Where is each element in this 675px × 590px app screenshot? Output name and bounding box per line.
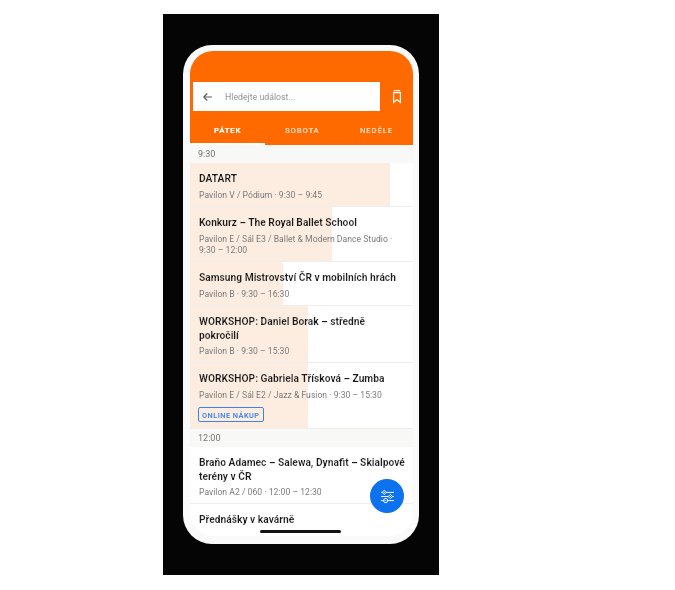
button[interactable]: Konkurz – The Royal Ballet School bbox=[190, 207, 413, 262]
staticText: ONLINE NÁKUP bbox=[202, 411, 260, 420]
staticText: Pavilon B · 9:30 – 16:30 bbox=[199, 289, 290, 299]
staticText: Samsung Mistrovství ČR v mobilních hrách bbox=[199, 272, 396, 284]
staticText: NEDĚLE bbox=[360, 126, 393, 135]
button[interactable]: Přednášky v kavárně bbox=[190, 504, 413, 533]
button[interactable]: ONLINE NÁKUP bbox=[198, 407, 264, 422]
staticText: Pavilon E / Sál E2 / Jazz & Fusion · 9:3… bbox=[199, 390, 382, 400]
staticText: 12:00 bbox=[198, 433, 221, 444]
staticText: Konkurz – The Royal Ballet School bbox=[199, 217, 357, 229]
button[interactable]: WORKSHOP: Gabriela Třísková – Zumba bbox=[190, 363, 413, 429]
button[interactable]: Samsung Mistrovství ČR v mobilních hrách bbox=[190, 262, 413, 306]
staticText: Hledejte událost... bbox=[225, 92, 296, 102]
button[interactable]: Bookmarks bbox=[384, 82, 409, 110]
button[interactable]: Braňo Adamec – Salewa, Dynafit – Skialpo… bbox=[190, 447, 413, 504]
staticText: Pavilon V / Pódium · 9:30 – 9:45 bbox=[199, 190, 323, 200]
staticText: SOBOTA bbox=[285, 126, 320, 135]
staticText: WORKSHOP: Daniel Borak – středně pokroči… bbox=[199, 316, 406, 341]
button[interactable]: SOBOTA bbox=[265, 116, 339, 145]
staticText: Pavilon E / Sál E3 / Ballet & Modern Dan… bbox=[199, 234, 406, 255]
button[interactable]: NEDĚLE bbox=[339, 116, 413, 145]
staticText: Braňo Adamec – Salewa, Dynafit – Skialpo… bbox=[199, 457, 406, 482]
button[interactable]: Hledejte událost... bbox=[193, 82, 380, 111]
staticText: WORKSHOP: Gabriela Třísková – Zumba bbox=[199, 373, 385, 385]
staticText: PÁTEK bbox=[214, 126, 242, 135]
staticText: 9:30 bbox=[198, 149, 216, 160]
staticText: Pavilon B · 9:30 – 15:30 bbox=[199, 346, 290, 356]
staticText: Přednášky v kavárně bbox=[199, 514, 295, 526]
staticText: Pavilon A2 / 060 · 12:00 – 12:30 bbox=[199, 487, 322, 497]
staticText: DATART bbox=[199, 173, 238, 185]
button[interactable]: DATART bbox=[190, 163, 413, 207]
button[interactable]: WORKSHOP: Daniel Borak – středně pokroči… bbox=[190, 306, 413, 363]
button[interactable]: Filter bbox=[370, 479, 404, 513]
button[interactable]: PÁTEK bbox=[190, 116, 265, 145]
